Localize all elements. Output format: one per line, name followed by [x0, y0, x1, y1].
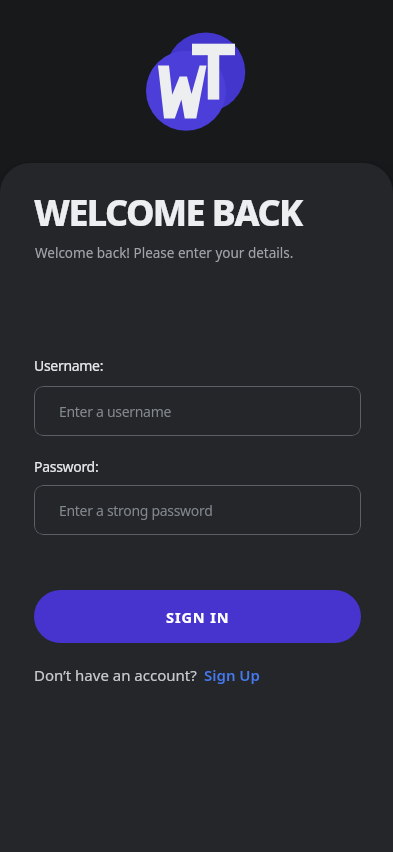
- staticText: WELCOME BACK: [34, 188, 302, 237]
- staticText: Enter a strong password: [59, 501, 213, 520]
- staticText: Username:: [34, 356, 104, 375]
- staticText: Enter a username: [59, 402, 172, 421]
- button[interactable]: Enter a username: [34, 386, 361, 436]
- staticText: Password:: [34, 457, 99, 476]
- staticText: SIGN IN: [166, 607, 230, 627]
- button[interactable]: SIGN IN: [34, 590, 361, 643]
- button[interactable]: Sign Up: [204, 665, 260, 685]
- staticText: Don’t have an account?: [34, 665, 201, 685]
- button[interactable]: Enter a strong password: [34, 485, 361, 535]
- staticText: Welcome back! Please enter your details.: [35, 244, 294, 262]
